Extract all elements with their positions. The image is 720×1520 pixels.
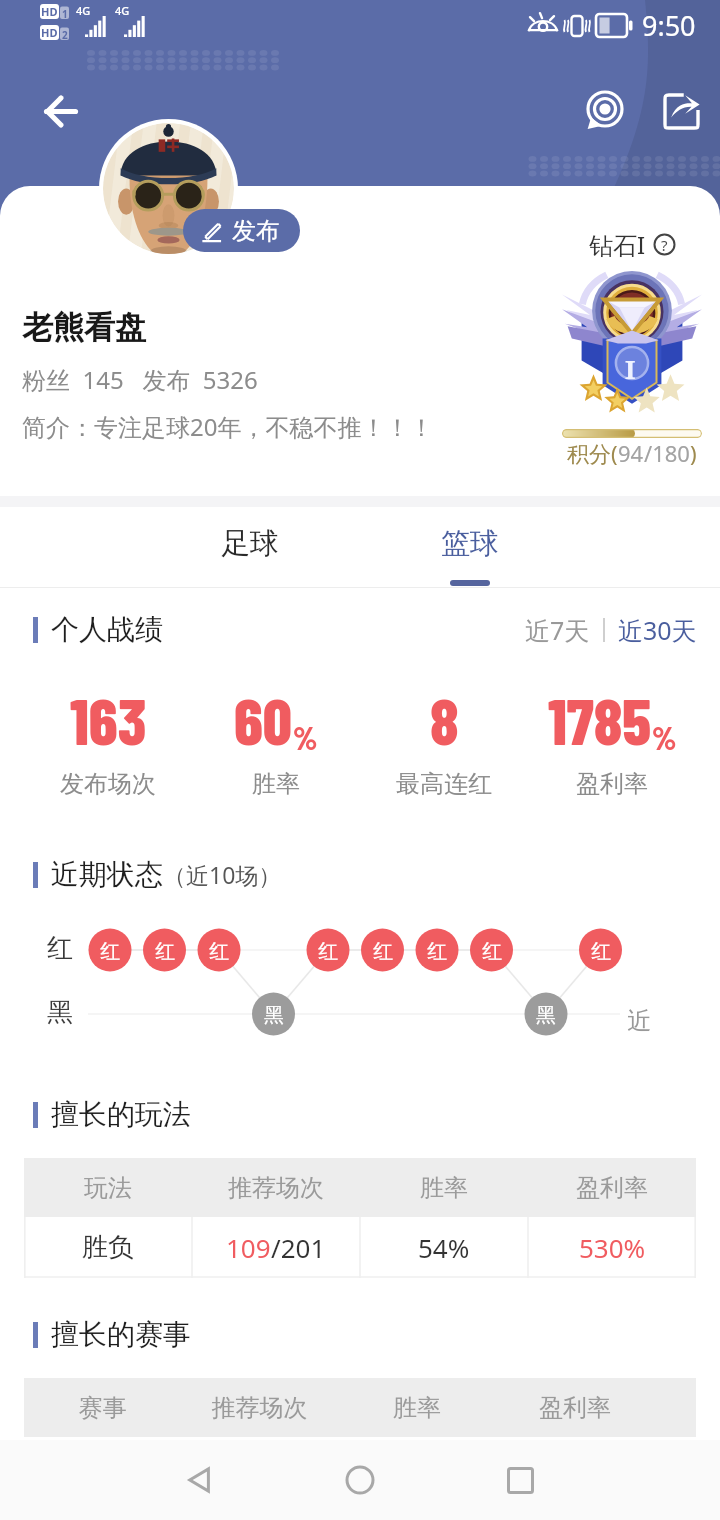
staticText: 胜率 — [252, 769, 300, 799]
staticText: 盈利率 — [496, 1393, 654, 1423]
button[interactable]: 近7天 — [525, 613, 590, 647]
staticText: 红 — [318, 939, 338, 964]
staticText: 发布 — [232, 216, 280, 246]
staticText: 篮球 — [441, 525, 499, 562]
staticText: （近10场） — [163, 859, 282, 890]
staticText: I — [625, 351, 636, 386]
staticText: 最高连红 — [396, 769, 492, 799]
staticText: HD — [41, 4, 58, 19]
button[interactable]: Back — [170, 1440, 230, 1520]
button[interactable]: Back — [34, 85, 86, 137]
staticText: 红 — [100, 939, 120, 964]
staticText: /201 — [271, 1230, 326, 1265]
staticText: /180 — [644, 438, 690, 468]
button[interactable]: 近30天 — [618, 613, 697, 647]
staticText: % — [652, 718, 677, 756]
staticText: 胜负 — [82, 1231, 134, 1264]
staticText: % — [293, 718, 318, 756]
staticText: 玩法 — [24, 1173, 192, 1203]
staticText: 黑 — [536, 1003, 556, 1028]
staticText: ? — [661, 235, 668, 255]
staticText: 94 — [618, 438, 644, 468]
button[interactable]: 足球 — [140, 507, 360, 587]
staticText: 擅长的玩法 — [51, 1097, 191, 1132]
staticText: HD — [41, 25, 58, 40]
staticText: 红 — [47, 932, 73, 965]
staticText: 个人战绩 — [51, 612, 163, 647]
staticText: 8 — [430, 681, 459, 758]
staticText: 近期状态 — [51, 857, 163, 892]
staticText: 粉丝 145 发布 5326 — [22, 363, 258, 396]
staticText: 简介：专注足球20年，不稳不推！！！ — [22, 410, 434, 443]
staticText: 54% — [418, 1230, 470, 1265]
staticText: 红 — [482, 939, 502, 964]
staticText: 老熊看盘 — [22, 308, 146, 347]
staticText: 9:50 — [642, 7, 696, 44]
staticText: 红 — [209, 939, 229, 964]
staticText: 红 — [427, 939, 447, 964]
staticText: 红 — [373, 939, 393, 964]
staticText: 胜率 — [338, 1393, 496, 1423]
staticText: 2 — [62, 28, 68, 42]
staticText: 擅长的赛事 — [51, 1317, 191, 1352]
staticText: 163 — [70, 681, 147, 758]
staticText: ) — [690, 438, 697, 468]
staticText: 近30天 — [618, 613, 697, 647]
staticText: 近 — [627, 1006, 651, 1036]
staticText: 109 — [226, 1230, 271, 1265]
staticText: 近7天 — [525, 613, 590, 647]
staticText: 4G — [76, 3, 91, 18]
staticText: 4G — [115, 3, 130, 18]
button[interactable]: Recents — [490, 1440, 550, 1520]
staticText: 60 — [234, 681, 293, 758]
staticText: 足球 — [221, 525, 279, 562]
button[interactable]: Share — [654, 84, 708, 138]
button[interactable]: 篮球 — [360, 507, 580, 587]
staticText: 红 — [155, 939, 175, 964]
staticText: 黑 — [47, 996, 73, 1029]
staticText: 推荐场次 — [192, 1173, 360, 1203]
staticText: 推荐场次 — [181, 1393, 338, 1423]
staticText: 钻石I — [589, 228, 646, 261]
staticText: 530% — [579, 1230, 646, 1265]
button[interactable]: Rank help — [653, 233, 676, 256]
staticText: 赛事 — [24, 1393, 181, 1423]
staticText: 盈利率 — [528, 1173, 696, 1203]
staticText: 红 — [591, 939, 611, 964]
staticText: 发布场次 — [60, 769, 156, 799]
staticText: 1 — [62, 7, 68, 21]
button[interactable]: Chat — [576, 82, 634, 140]
staticText: 黑 — [264, 1003, 284, 1028]
staticText: 1785 — [548, 681, 652, 758]
button[interactable]: 发布 — [183, 209, 300, 252]
staticText: 盈利率 — [576, 769, 648, 799]
button[interactable]: Home — [330, 1440, 390, 1520]
staticText: 积分( — [567, 438, 618, 468]
staticText: 胜率 — [360, 1173, 528, 1203]
